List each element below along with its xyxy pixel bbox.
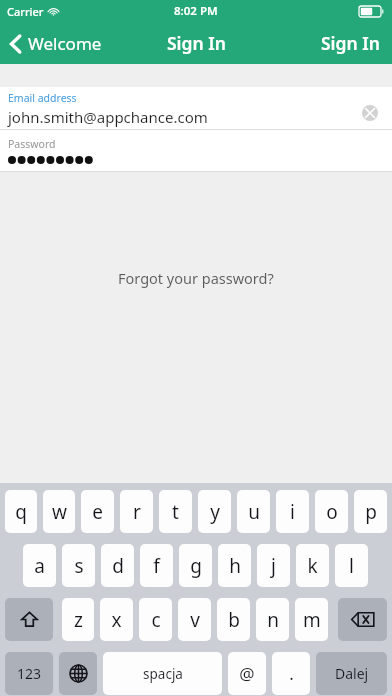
staticText: g — [190, 553, 202, 579]
button[interactable]: @ — [228, 652, 266, 695]
staticText: d — [112, 553, 124, 579]
staticText: s — [74, 553, 84, 579]
button[interactable]: h — [218, 544, 251, 587]
staticText: Sign In — [321, 31, 380, 55]
staticText: c — [151, 607, 161, 633]
staticText: 123 — [17, 664, 42, 683]
staticText: Carrier — [7, 4, 44, 19]
button[interactable]: spacja — [103, 652, 222, 695]
staticText: m — [303, 607, 321, 633]
staticText: r — [133, 499, 141, 525]
staticText: o — [326, 499, 338, 525]
button[interactable]: Switch keyboard — [59, 652, 97, 695]
staticText: u — [248, 499, 260, 525]
button[interactable]: Forgot your password? — [110, 264, 282, 292]
staticText: j — [271, 553, 276, 579]
staticText: p — [365, 499, 377, 525]
button[interactable]: e — [81, 490, 114, 533]
button[interactable]: q — [5, 490, 37, 533]
button[interactable]: Clear text — [356, 99, 384, 127]
button[interactable]: b — [217, 598, 250, 641]
staticText: 8:02 PM — [174, 3, 218, 19]
staticText: y — [210, 499, 220, 525]
staticText: w — [52, 499, 67, 525]
staticText: k — [307, 553, 318, 579]
staticText: Sign In — [167, 31, 226, 55]
button[interactable]: r — [120, 490, 153, 533]
staticText: t — [172, 499, 179, 525]
button[interactable]: u — [237, 490, 270, 533]
button[interactable]: a — [23, 544, 56, 587]
staticText: z — [74, 607, 83, 633]
staticText: v — [190, 607, 200, 633]
button[interactable]: o — [315, 490, 348, 533]
button[interactable]: f — [140, 544, 173, 587]
staticText: Dalej — [335, 664, 369, 683]
button[interactable]: p — [354, 490, 387, 533]
button[interactable]: j — [257, 544, 290, 587]
button[interactable]: Shift — [5, 598, 53, 641]
button[interactable]: y — [198, 490, 231, 533]
staticText: Password — [8, 137, 56, 151]
button[interactable]: m — [295, 598, 328, 641]
staticText: . — [289, 662, 294, 685]
button[interactable]: i — [276, 490, 309, 533]
button[interactable]: v — [178, 598, 211, 641]
button[interactable]: x — [100, 598, 133, 641]
button[interactable]: k — [296, 544, 329, 587]
button[interactable]: Sign In — [309, 25, 392, 61]
button[interactable]: n — [256, 598, 289, 641]
button[interactable]: d — [101, 544, 134, 587]
staticText: b — [228, 607, 240, 633]
staticText: Forgot your password? — [118, 268, 274, 288]
staticText: h — [229, 553, 241, 579]
staticText: spacja — [143, 665, 183, 683]
staticText: Welcome — [28, 32, 102, 55]
button[interactable]: z — [62, 598, 94, 641]
button[interactable]: Welcome — [0, 26, 112, 61]
button[interactable]: Backspace — [338, 598, 387, 641]
button[interactable]: . — [272, 652, 310, 695]
button[interactable]: l — [335, 544, 368, 587]
staticText: a — [34, 553, 45, 579]
staticText: l — [349, 553, 354, 579]
staticText: e — [92, 499, 103, 525]
staticText: x — [111, 607, 122, 633]
button[interactable]: Dalej — [316, 652, 387, 695]
button[interactable]: g — [179, 544, 212, 587]
button[interactable]: t — [159, 490, 192, 533]
staticText: n — [267, 607, 279, 633]
staticText: john.smith@appchance.com — [8, 107, 208, 127]
staticText: i — [290, 499, 295, 525]
button[interactable]: 123 — [5, 652, 53, 695]
staticText: f — [153, 553, 160, 579]
button[interactable]: s — [62, 544, 95, 587]
staticText: @ — [239, 662, 255, 685]
button[interactable]: w — [43, 490, 75, 533]
button[interactable]: c — [139, 598, 172, 641]
staticText: Email address — [8, 91, 77, 105]
staticText: q — [15, 499, 27, 525]
